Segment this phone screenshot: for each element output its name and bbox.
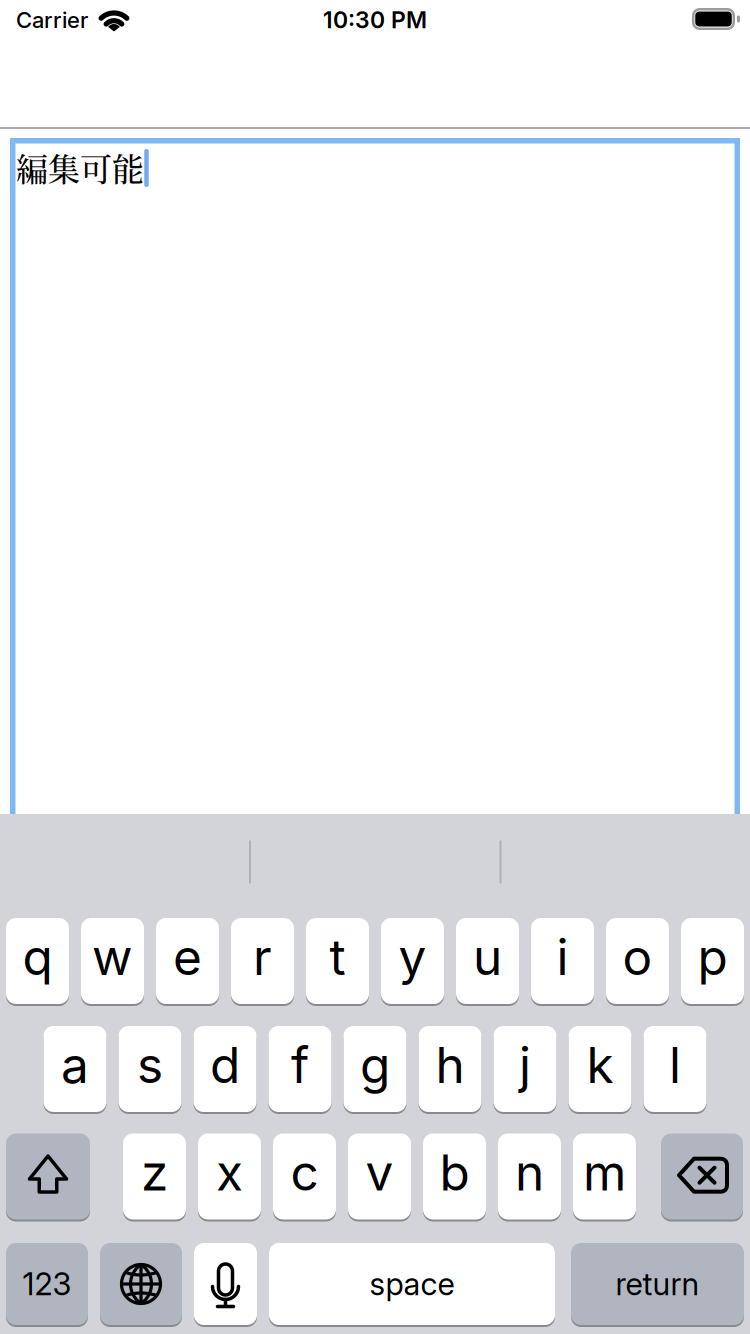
staticText: d (210, 1035, 240, 1095)
button[interactable]: Dictate (194, 1243, 257, 1325)
button[interactable]: d (193, 1026, 256, 1112)
button[interactable]: c (273, 1133, 336, 1219)
staticText: b (439, 1143, 469, 1202)
staticText: 10:30 PM (323, 6, 427, 34)
button[interactable]: q (6, 918, 69, 1004)
button[interactable]: g (343, 1026, 406, 1112)
staticText: y (398, 927, 426, 987)
staticText: r (253, 927, 272, 987)
button[interactable]: k (568, 1026, 631, 1112)
button[interactable]: return (571, 1243, 744, 1325)
staticText: Carrier (16, 7, 88, 33)
staticText: g (360, 1035, 390, 1095)
staticText: a (61, 1035, 89, 1095)
staticText: c (290, 1143, 318, 1202)
staticText: j (519, 1035, 531, 1095)
staticText: f (291, 1035, 309, 1095)
button[interactable]: t (306, 918, 369, 1004)
staticText: x (216, 1143, 243, 1202)
staticText: w (92, 927, 133, 987)
staticText: l (669, 1035, 681, 1095)
button[interactable]: x (198, 1133, 261, 1219)
staticText: i (556, 927, 568, 987)
button[interactable]: s (118, 1026, 181, 1112)
button[interactable]: p (681, 918, 744, 1004)
button[interactable]: j (493, 1026, 556, 1112)
button[interactable]: o (606, 918, 669, 1004)
staticText: p (697, 927, 727, 987)
staticText: o (622, 927, 652, 987)
staticText: m (583, 1143, 626, 1202)
staticText: space (369, 1265, 454, 1303)
button[interactable]: v (348, 1133, 411, 1219)
button[interactable]: b (423, 1133, 486, 1219)
button[interactable]: Delete (661, 1133, 743, 1219)
button[interactable]: e (156, 918, 219, 1004)
staticText: k (586, 1035, 613, 1095)
staticText: v (365, 1143, 393, 1202)
button[interactable]: Shift (6, 1133, 90, 1219)
button[interactable]: 123 (6, 1243, 88, 1325)
button[interactable]: n (498, 1133, 561, 1219)
staticText: s (137, 1035, 163, 1095)
staticText: h (435, 1035, 464, 1095)
button[interactable]: l (643, 1026, 706, 1112)
staticText: n (515, 1143, 544, 1202)
staticText: z (141, 1143, 168, 1202)
button[interactable]: i (531, 918, 594, 1004)
button[interactable]: a (43, 1026, 106, 1112)
button[interactable]: f (268, 1026, 331, 1112)
staticText: q (22, 927, 52, 987)
button[interactable]: u (456, 918, 519, 1004)
staticText: 編集可能 (16, 144, 144, 190)
staticText: 123 (22, 1265, 71, 1303)
button[interactable]: w (81, 918, 144, 1004)
staticText: t (329, 927, 345, 987)
button[interactable]: h (418, 1026, 481, 1112)
staticText: u (473, 927, 502, 987)
button[interactable]: m (573, 1133, 636, 1219)
button[interactable]: r (231, 918, 294, 1004)
button[interactable]: space (269, 1243, 555, 1325)
button[interactable]: y (381, 918, 444, 1004)
button[interactable]: Next keyboard (100, 1243, 182, 1325)
staticText: e (173, 927, 202, 987)
staticText: return (615, 1265, 699, 1303)
button[interactable]: z (123, 1133, 186, 1219)
